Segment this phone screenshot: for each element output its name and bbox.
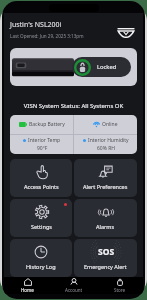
- staticText: Interior Temp: [28, 137, 61, 144]
- button[interactable]: Locked: [72, 57, 131, 77]
- staticText: Alert Preferences: [83, 183, 128, 190]
- staticText: History Log: [26, 263, 56, 270]
- staticText: Last Opened: Jun 29, 2025 3:13pm: [10, 33, 84, 39]
- button[interactable]: Interior Temp: [10, 135, 73, 154]
- button[interactable]: Settings: [10, 199, 72, 237]
- button[interactable]: Access Points: [10, 159, 72, 197]
- staticText: Alarms: [96, 223, 115, 230]
- button[interactable]: Account: [51, 277, 97, 294]
- staticText: Online: [102, 121, 118, 128]
- staticText: Backup Battery: [29, 121, 65, 128]
- staticText: Settings: [31, 223, 52, 230]
- staticText: Access Points: [24, 183, 59, 190]
- button[interactable]: Alarms: [74, 199, 137, 237]
- staticText: Home: [21, 287, 34, 293]
- button[interactable]: Backup Battery: [10, 115, 73, 134]
- staticText: Account: [65, 287, 83, 293]
- button[interactable]: Interior Humidity: [74, 135, 137, 154]
- staticText: 90°F: [37, 145, 48, 152]
- staticText: SOS: [98, 246, 115, 258]
- staticText: Store: [114, 287, 126, 293]
- staticText: Justin's NSL200i: [10, 20, 62, 30]
- staticText: VISN System Status: All Systems OK: [4, 102, 143, 110]
- staticText: Locked: [97, 63, 117, 71]
- button[interactable]: History Log: [10, 239, 72, 277]
- button[interactable]: Brand logo: [117, 28, 135, 38]
- staticText: Emergency Alert: [84, 263, 127, 270]
- button[interactable]: Alert Preferences: [74, 159, 137, 197]
- button[interactable]: SOS: [74, 239, 137, 277]
- button[interactable]: Store: [97, 277, 143, 294]
- button[interactable]: Home: [4, 277, 51, 294]
- button[interactable]: Online: [74, 115, 137, 134]
- staticText: Interior Humidity: [88, 137, 129, 144]
- staticText: 60% RH: [97, 145, 115, 152]
